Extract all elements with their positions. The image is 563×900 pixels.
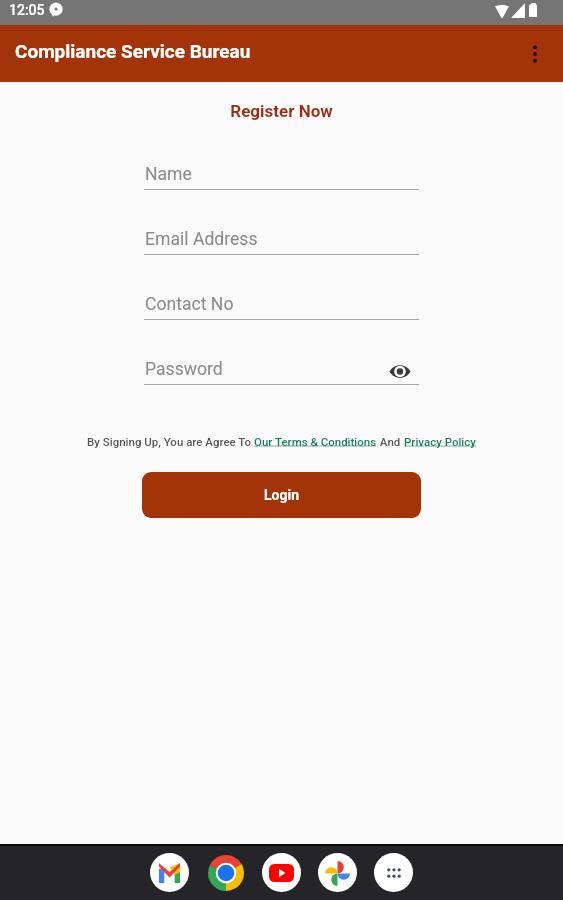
button[interactable]: More options	[513, 32, 557, 76]
staticText: By Signing Up, You are Agree To	[87, 435, 254, 448]
button[interactable]: Gmail	[150, 853, 189, 892]
staticText: And	[377, 435, 404, 448]
button[interactable]: Email Address	[144, 217, 419, 255]
staticText: Email Address	[145, 229, 258, 250]
staticText: Password	[145, 359, 223, 380]
button[interactable]: Name	[144, 152, 419, 190]
button[interactable]: Password	[144, 347, 419, 385]
staticText: Compliance Service Bureau	[15, 40, 251, 62]
staticText: 12:05	[9, 2, 45, 18]
staticText: Our Terms & Conditions	[254, 435, 377, 448]
button[interactable]: Chrome	[206, 853, 245, 892]
staticText: Privacy Policy	[404, 435, 476, 448]
button[interactable]: Login	[142, 472, 421, 518]
button[interactable]: Photos	[318, 853, 357, 892]
button[interactable]: Toggle password visibility	[386, 357, 414, 385]
button[interactable]: YouTube	[262, 853, 301, 892]
button[interactable]: All apps	[374, 853, 413, 892]
staticText: Register Now	[0, 101, 563, 121]
button[interactable]: Contact No	[144, 282, 419, 320]
staticText: Login	[264, 487, 300, 503]
staticText: Contact No	[145, 294, 234, 315]
button[interactable]: By Signing Up, You are Agree To	[0, 435, 563, 448]
staticText: Name	[145, 164, 192, 185]
